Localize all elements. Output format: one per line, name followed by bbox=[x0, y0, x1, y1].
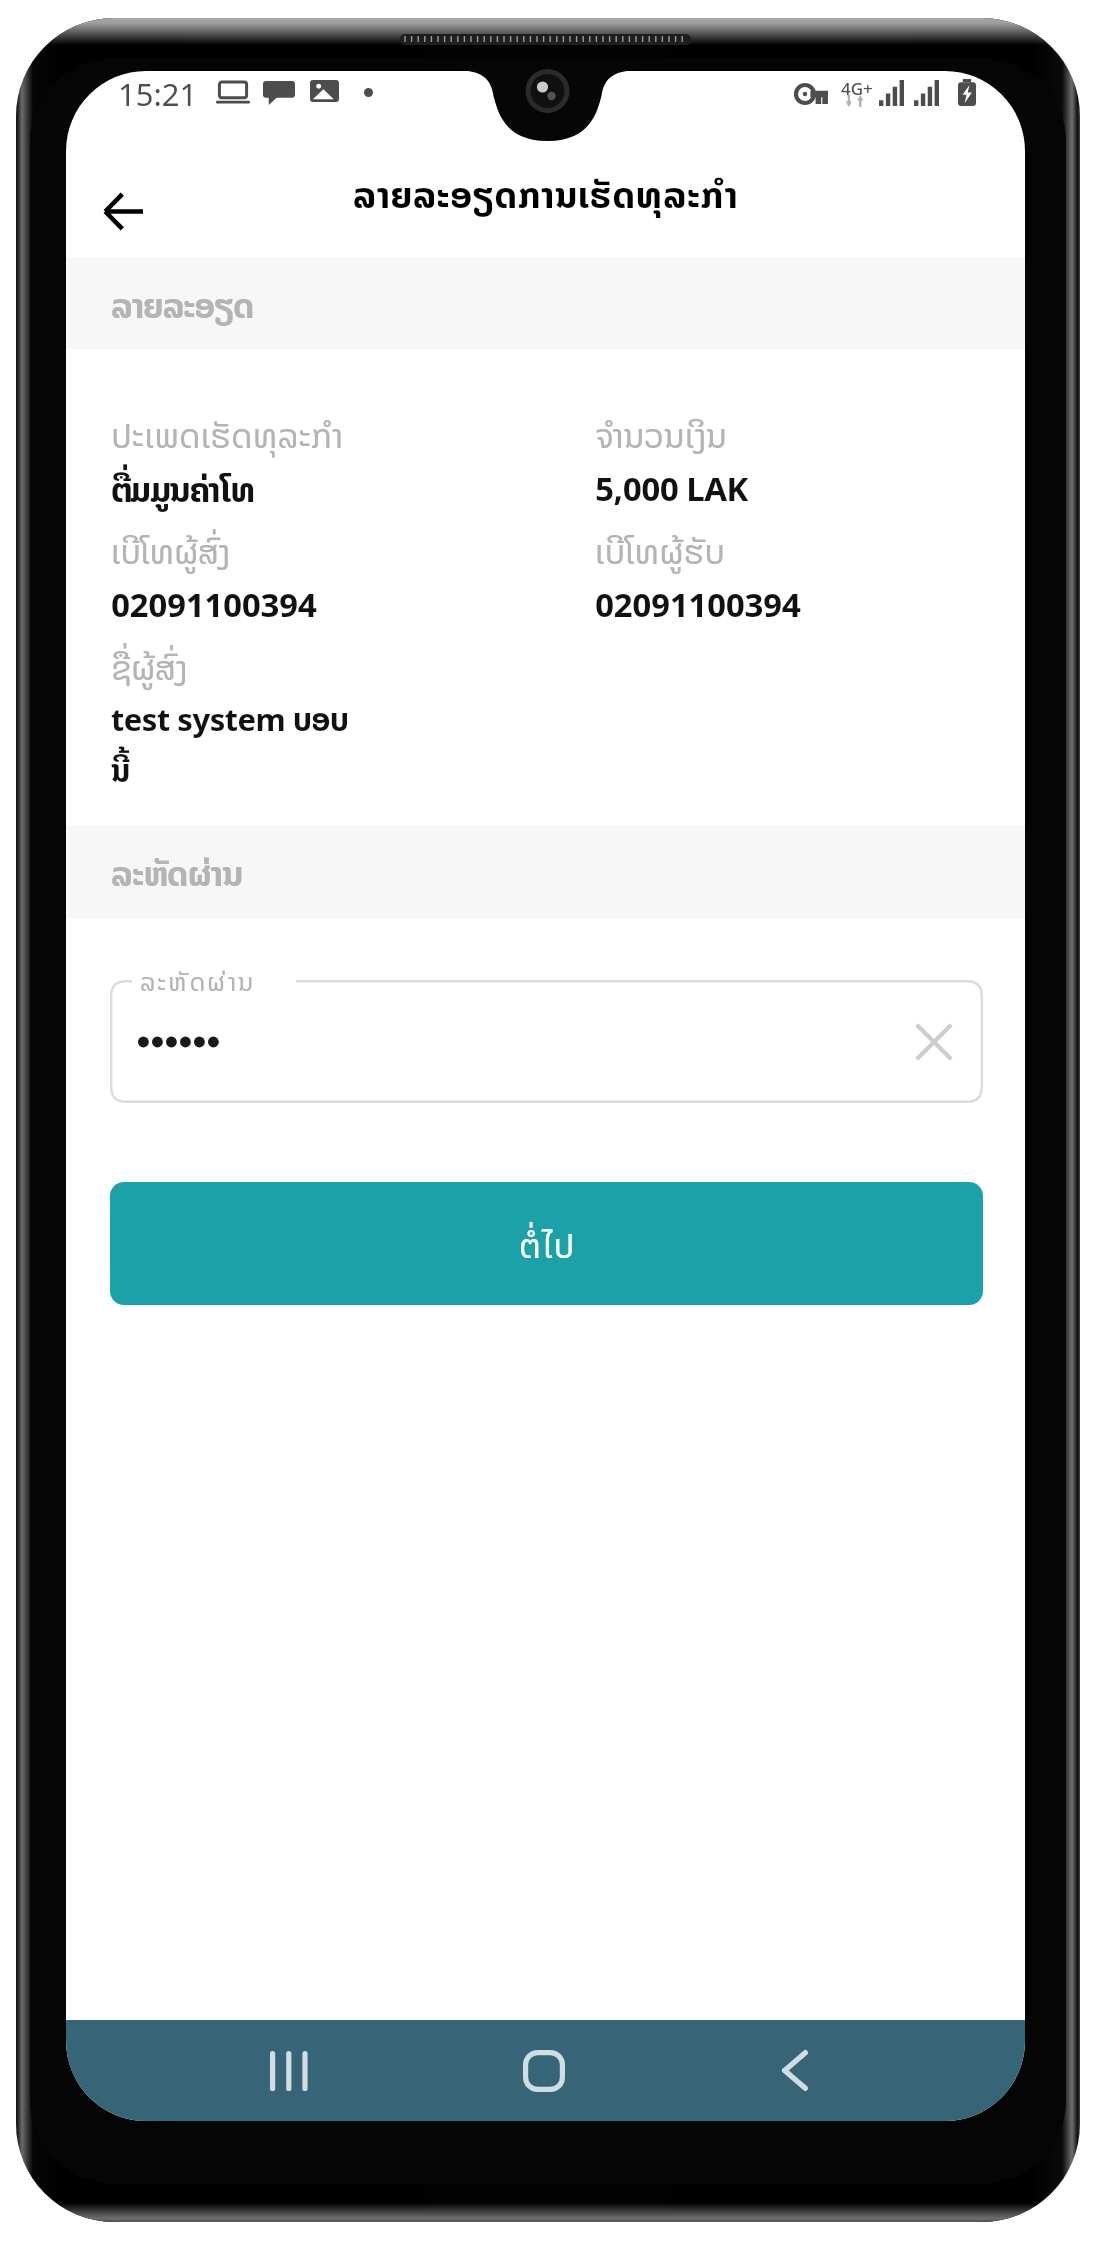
staticText: ຕື່ມມູນຄ່າໂທ bbox=[111, 462, 255, 518]
staticText: ຕໍ່ໄປ bbox=[519, 1218, 575, 1274]
staticText: 02091100394 bbox=[595, 578, 801, 632]
staticText: ຊື່ຜູ້ສົ່ງ bbox=[111, 640, 188, 696]
button[interactable]: Recent apps bbox=[234, 2020, 344, 2121]
button[interactable]: Clear password bbox=[901, 1009, 967, 1075]
staticText: ຈໍານວນເງິນ bbox=[595, 408, 727, 464]
staticText: ເບີໂທຜູ້ຮັບ bbox=[595, 524, 726, 580]
staticText: 15:21 bbox=[118, 73, 198, 115]
staticText: ເບີໂທຜູ້ສົ່ງ bbox=[111, 524, 231, 580]
staticText: ລາຍລະອຽດ bbox=[111, 278, 254, 334]
button[interactable]: Back bbox=[81, 169, 165, 253]
staticText: 02091100394 bbox=[111, 578, 317, 632]
staticText: 4G+ bbox=[841, 77, 873, 100]
staticText: 5,000 LAK bbox=[595, 462, 748, 516]
button[interactable]: Clear password bbox=[110, 980, 983, 1103]
staticText: ລະຫັດຜ່ານ bbox=[140, 961, 256, 1002]
staticText: ລາຍລະອຽດການເຮັດທຸລະກຳ bbox=[353, 165, 739, 224]
button[interactable]: Back bbox=[740, 2020, 850, 2121]
button[interactable]: Home bbox=[489, 2020, 599, 2121]
staticText: ປະເພດເຮັດທຸລະກຳ bbox=[111, 408, 344, 464]
button[interactable]: ຕໍ່ໄປ bbox=[110, 1182, 983, 1305]
staticText: ລະຫັດຜ່ານ bbox=[111, 846, 243, 902]
staticText: test system ບອບນີ້ bbox=[111, 694, 367, 796]
